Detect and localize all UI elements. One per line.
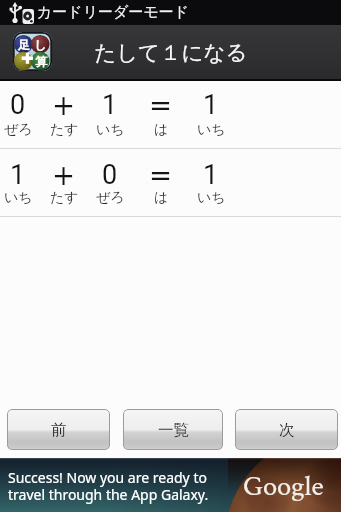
staticText: 1	[102, 89, 118, 121]
staticText: いち	[96, 121, 125, 139]
staticText: 一覧	[158, 420, 189, 440]
staticText: は	[154, 121, 169, 139]
button[interactable]: Success! Now you are ready to travel thr…	[0, 458, 341, 512]
button[interactable]: 一覧	[123, 409, 223, 450]
staticText: ぜろ	[96, 189, 125, 207]
staticText: たす	[50, 189, 79, 207]
staticText: ぜろ	[4, 121, 33, 139]
staticText: たして１になる	[94, 39, 248, 66]
staticText: いち	[4, 189, 33, 207]
button[interactable]: 次	[235, 409, 338, 450]
staticText: カードリーダーモード	[37, 3, 190, 22]
button[interactable]: 前	[7, 409, 110, 450]
staticText: 1	[203, 89, 219, 121]
staticText: Google	[243, 468, 324, 505]
staticText: 算	[35, 54, 47, 69]
staticText: =	[149, 159, 173, 191]
staticText: いち	[197, 121, 226, 139]
staticText: Success! Now you are ready to travel thr…	[8, 468, 209, 505]
staticText: たす	[50, 121, 79, 139]
staticText: 次	[279, 420, 295, 440]
staticText: +	[52, 159, 76, 191]
staticText: 0	[10, 89, 26, 121]
staticText: は	[154, 189, 169, 207]
staticText: +	[52, 89, 76, 121]
staticText: =	[149, 89, 173, 121]
staticText: 足	[18, 37, 30, 52]
staticText: いち	[197, 189, 226, 207]
staticText: 0	[102, 159, 118, 191]
staticText: し	[34, 37, 47, 52]
staticText: 1	[203, 159, 219, 191]
staticText: 前	[51, 420, 67, 440]
staticText: 1	[10, 159, 26, 191]
